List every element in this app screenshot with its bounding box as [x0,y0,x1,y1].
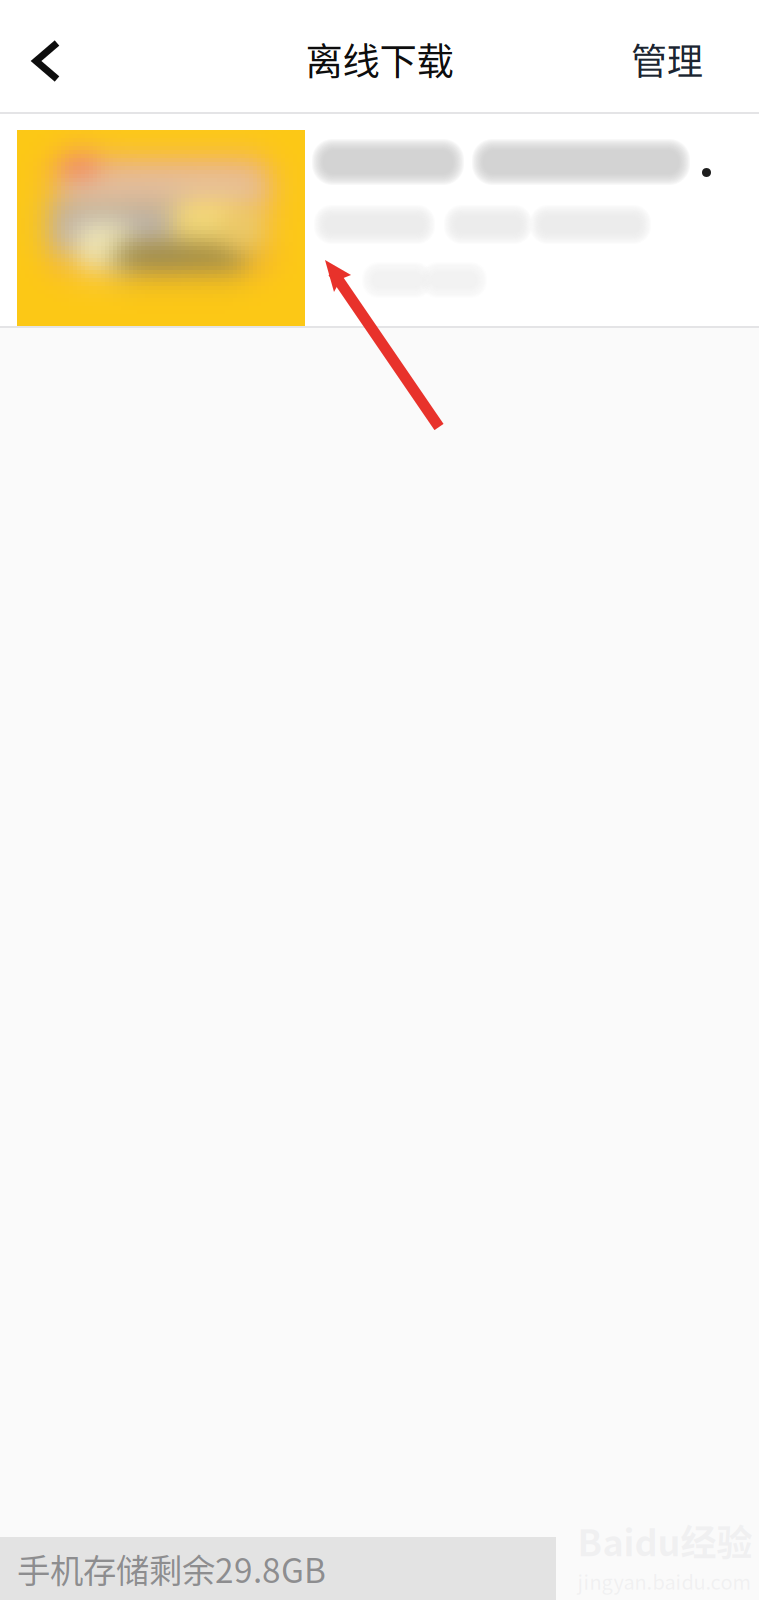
staticText: Baidu经验 [577,1514,752,1567]
button[interactable] [0,114,759,326]
staticText: 离线下载 [305,32,453,86]
staticText: jingyan.baidu.com [577,1567,751,1596]
staticText: 管理 [631,33,703,85]
button[interactable]: Back [16,16,75,96]
staticText: 手机存储剩余29.8GB [17,1544,326,1593]
button[interactable]: 管理 [617,16,743,96]
